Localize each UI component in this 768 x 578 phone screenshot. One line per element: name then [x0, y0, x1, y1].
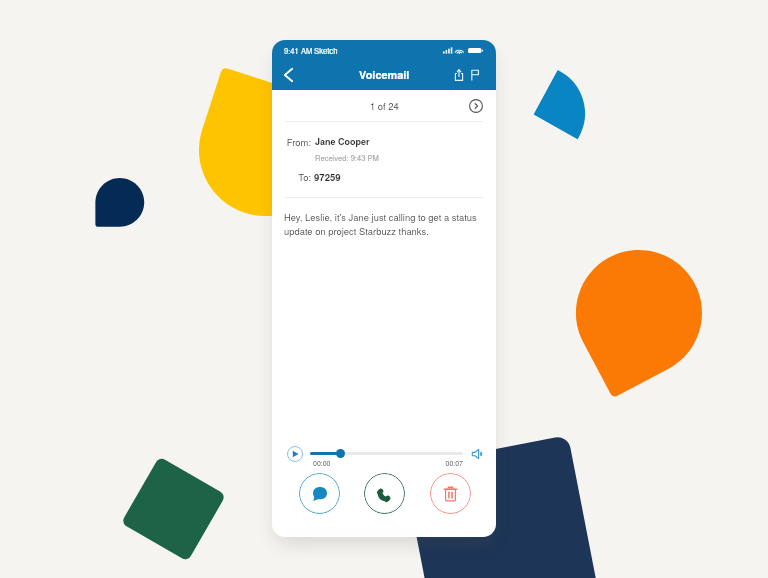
- staticText: Received: 9:43 PM: [315, 152, 379, 163]
- staticText: Hey, Leslie, it's Jane just calling to g…: [284, 210, 480, 238]
- staticText: To:: [282, 170, 311, 183]
- button[interactable]: Message: [299, 473, 340, 514]
- staticText: 9:41 AM: [284, 45, 313, 56]
- staticText: 1 of 24: [370, 99, 399, 112]
- button[interactable]: Flag: [466, 66, 484, 84]
- staticText: From:: [282, 135, 311, 148]
- button[interactable]: Next: [467, 97, 485, 115]
- button[interactable]: Back: [277, 64, 299, 86]
- staticText: Sketch: [314, 45, 338, 56]
- staticText: Voicemail: [359, 67, 410, 83]
- button[interactable]: Delete: [430, 473, 471, 514]
- staticText: Jane Cooper: [315, 135, 370, 148]
- staticText: 97259: [314, 170, 341, 184]
- button[interactable]: Share: [450, 66, 468, 84]
- button[interactable]: Play: [286, 445, 303, 462]
- button[interactable]: Call: [364, 473, 405, 514]
- staticText: 00:00: [313, 458, 331, 468]
- staticText: 00:07: [443, 458, 463, 468]
- button[interactable]: Volume: [471, 447, 484, 460]
